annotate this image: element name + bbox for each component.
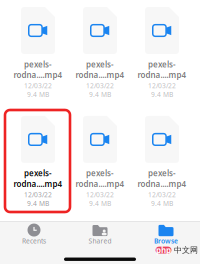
staticText: rodna....mp4 (137, 70, 186, 80)
staticText: 9.4 MB (89, 90, 111, 99)
staticText: rodna....mp4 (13, 179, 62, 189)
staticText: 12/03/22 (24, 190, 52, 199)
button[interactable]: Shared (67, 224, 133, 250)
staticText: Recents (22, 237, 46, 245)
staticText: Shared (88, 237, 111, 245)
button[interactable]: pexels- (69, 116, 131, 208)
staticText: 9.4 MB (89, 199, 111, 208)
button[interactable]: Browse (133, 224, 199, 250)
staticText: 12/03/22 (86, 81, 114, 90)
button[interactable]: pexels- (131, 7, 193, 99)
staticText: rodna....mp4 (75, 179, 124, 189)
staticText: pexels- (148, 168, 176, 179)
staticText: 12/03/22 (86, 190, 114, 199)
button[interactable]: pexels- (7, 116, 69, 208)
staticText: 9.4 MB (151, 90, 173, 99)
staticText: pexels- (86, 168, 114, 179)
staticText: pexels- (24, 59, 52, 70)
staticText: rodna....mp4 (13, 70, 62, 80)
staticText: 9.4 MB (27, 90, 49, 99)
button[interactable]: pexels- (131, 116, 193, 208)
staticText: 12/03/22 (24, 81, 52, 90)
button[interactable]: pexels- (7, 7, 69, 99)
button[interactable]: pexels- (69, 7, 131, 99)
staticText: 9.4 MB (151, 199, 173, 208)
staticText: 12/03/22 (148, 81, 176, 90)
staticText: pexels- (86, 59, 114, 70)
staticText: 12/03/22 (148, 190, 176, 199)
staticText: 中文网 (174, 245, 198, 255)
staticText: 9.4 MB (27, 199, 49, 208)
staticText: pexels- (24, 168, 52, 179)
staticText: php (156, 245, 171, 255)
staticText: rodna....mp4 (75, 70, 124, 80)
staticText: rodna....mp4 (137, 179, 186, 189)
staticText: pexels- (148, 59, 176, 70)
staticText: Browse (154, 237, 178, 245)
button[interactable]: Recents (1, 224, 67, 250)
